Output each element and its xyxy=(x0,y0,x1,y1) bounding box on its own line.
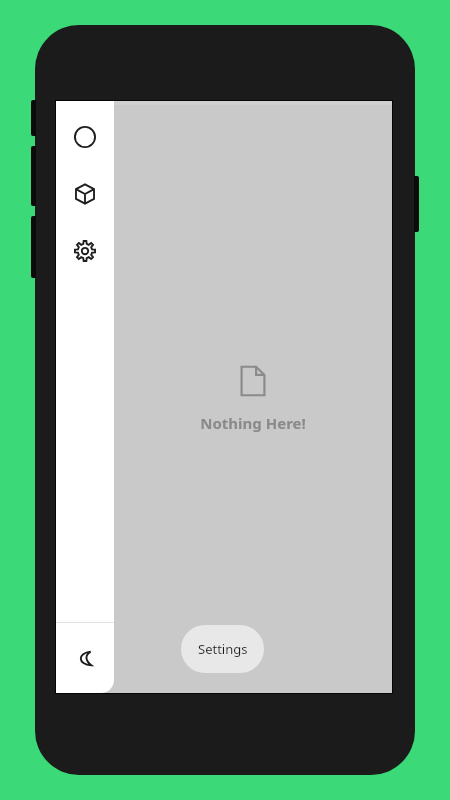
button[interactable]: Settings xyxy=(56,234,114,267)
staticText: Nothing Here! xyxy=(200,413,306,433)
button[interactable]: Toggle dark mode xyxy=(56,623,114,693)
staticText: Settings xyxy=(198,640,248,658)
button[interactable]: Home xyxy=(56,120,114,153)
button[interactable]: Settings xyxy=(181,625,264,673)
button[interactable]: Packages xyxy=(56,177,114,210)
